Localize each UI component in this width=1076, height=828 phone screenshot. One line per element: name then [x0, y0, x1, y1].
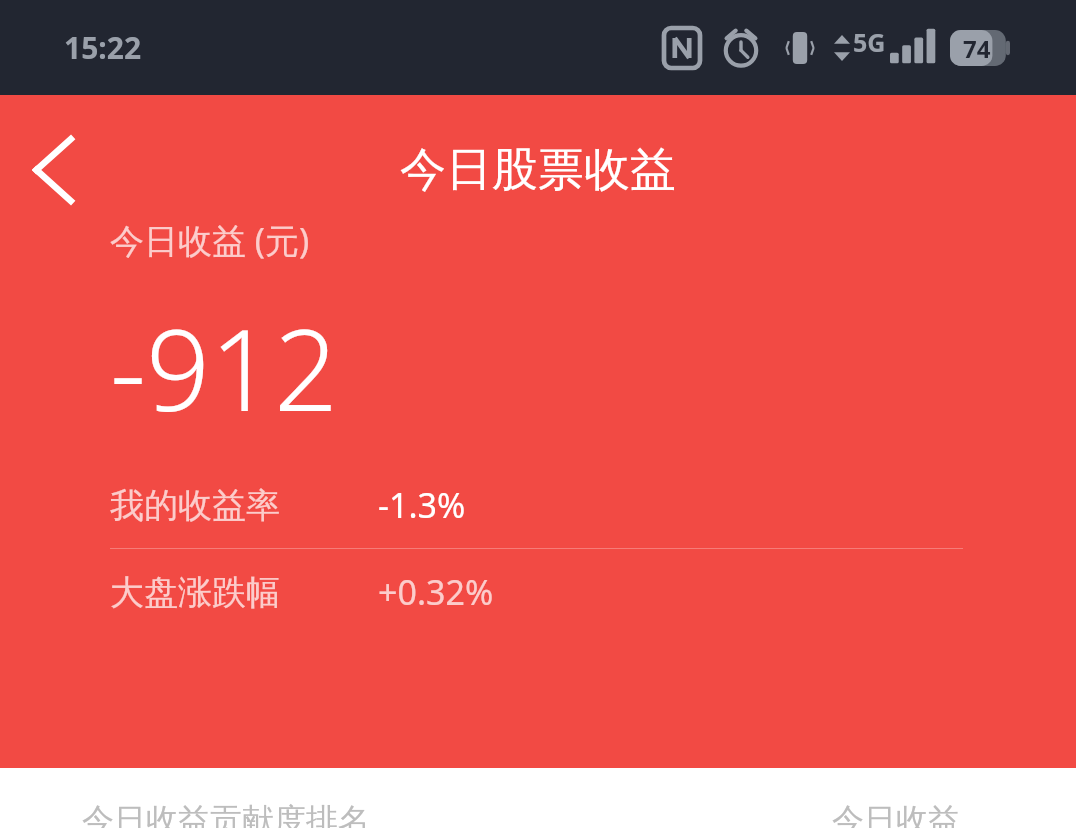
staticText: 今日收益 (元) [110, 217, 310, 263]
button[interactable]: Back [16, 132, 92, 208]
staticText: 5G [853, 25, 886, 59]
staticText: 今日股票收益 [400, 141, 676, 199]
staticText: -912 [110, 291, 338, 444]
staticText: -1.3% [378, 482, 466, 528]
staticText: 74 [963, 32, 991, 65]
staticText: 15:22 [64, 27, 142, 68]
staticText: 大盘涨跌幅 [110, 571, 378, 614]
staticText: 我的收益率 [110, 484, 378, 527]
staticText: +0.32% [378, 569, 494, 615]
staticText: 今日收益贡献度排名 [82, 800, 370, 828]
staticText: 今日收益 [832, 800, 960, 828]
